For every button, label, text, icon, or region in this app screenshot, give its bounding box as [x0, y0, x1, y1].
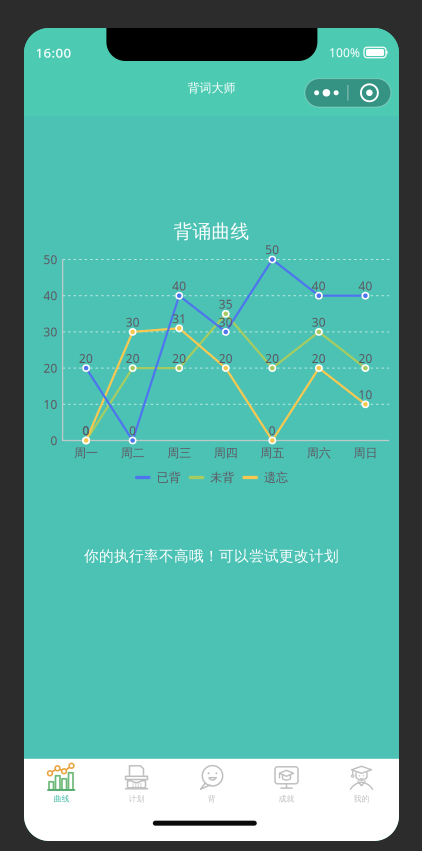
staticText: 100%: [329, 44, 360, 60]
staticText: 20: [79, 350, 93, 366]
staticText: 周日: [353, 446, 377, 460]
button[interactable]: 曲线: [24, 764, 99, 812]
button[interactable]: 计划: [99, 764, 174, 812]
button[interactable]: 我的: [324, 764, 399, 812]
button[interactable]: 成就: [249, 764, 324, 812]
staticText: 20: [172, 350, 186, 366]
staticText: 背: [207, 794, 215, 804]
staticText: 0: [129, 423, 136, 439]
staticText: 已背: [157, 470, 181, 485]
staticText: 20: [43, 360, 57, 376]
staticText: 10: [43, 396, 57, 412]
staticText: 背诵曲线: [173, 220, 249, 243]
staticText: 35: [219, 296, 233, 312]
staticText: 30: [219, 314, 233, 330]
button[interactable]: More options: [305, 79, 391, 107]
staticText: 遗忘: [264, 470, 288, 485]
staticText: 50: [265, 242, 279, 258]
staticText: 你的执行率不高哦！可以尝试更改计划: [84, 547, 339, 565]
staticText: 计划: [128, 794, 144, 804]
staticText: 0: [83, 423, 90, 439]
staticText: 周一: [74, 446, 98, 460]
staticText: 40: [312, 278, 326, 294]
staticText: 20: [358, 350, 372, 366]
staticText: 40: [358, 278, 372, 294]
button[interactable]: 背: [174, 764, 249, 812]
staticText: 20: [312, 350, 326, 366]
staticText: 16:00: [35, 44, 71, 61]
staticText: 30: [126, 314, 140, 330]
staticText: 0: [269, 423, 276, 439]
staticText: 周六: [307, 446, 331, 460]
staticText: 曲线: [53, 794, 69, 804]
staticText: 20: [126, 350, 140, 366]
staticText: 周四: [214, 446, 238, 460]
staticText: 30: [43, 324, 57, 340]
staticText: 20: [265, 350, 279, 366]
staticText: 10: [358, 386, 372, 402]
staticText: 成就: [278, 794, 294, 804]
staticText: 我的: [353, 794, 369, 804]
staticText: 未背: [210, 470, 234, 485]
staticText: 31: [172, 310, 186, 326]
staticText: 40: [172, 278, 186, 294]
staticText: 30: [312, 314, 326, 330]
staticText: 0: [50, 432, 57, 448]
staticText: 40: [43, 288, 57, 304]
staticText: 周五: [260, 446, 284, 460]
staticText: 20: [219, 350, 233, 366]
staticText: 周二: [121, 446, 145, 460]
staticText: 周三: [167, 446, 191, 460]
staticText: 背词大师: [187, 81, 235, 95]
staticText: 50: [43, 251, 57, 267]
staticText: 0: [83, 423, 90, 439]
